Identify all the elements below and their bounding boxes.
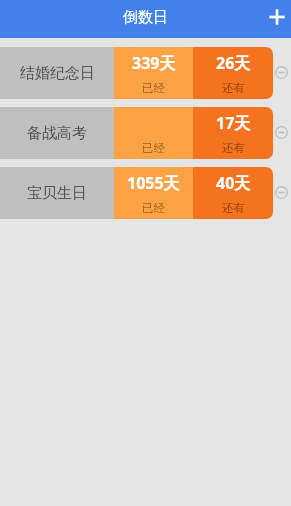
staticText: 还有 [222,81,245,95]
button[interactable]: 结婚纪念日 [0,47,273,99]
staticText: 备战高考 [27,124,87,143]
staticText: 26天 [216,52,251,74]
staticText: 还有 [222,201,245,215]
staticText: 17天 [216,112,251,134]
staticText: 倒数日 [123,8,168,27]
button[interactable]: 备战高考 [0,107,273,159]
staticText: 已经 [142,81,165,95]
staticText: 339天 [132,52,176,74]
button[interactable]: Delete [272,123,290,141]
button[interactable]: Delete [272,183,290,201]
staticText: 40天 [216,172,251,194]
button[interactable]: Delete [272,63,290,81]
button[interactable]: Add [262,2,291,32]
staticText: 已经 [142,201,165,215]
staticText: 宝贝生日 [27,184,87,203]
staticText: 还有 [222,141,245,155]
staticText: 已经 [142,141,165,155]
staticText: 1055天 [127,172,180,194]
staticText: 结婚纪念日 [20,64,95,83]
button[interactable]: 宝贝生日 [0,167,273,219]
